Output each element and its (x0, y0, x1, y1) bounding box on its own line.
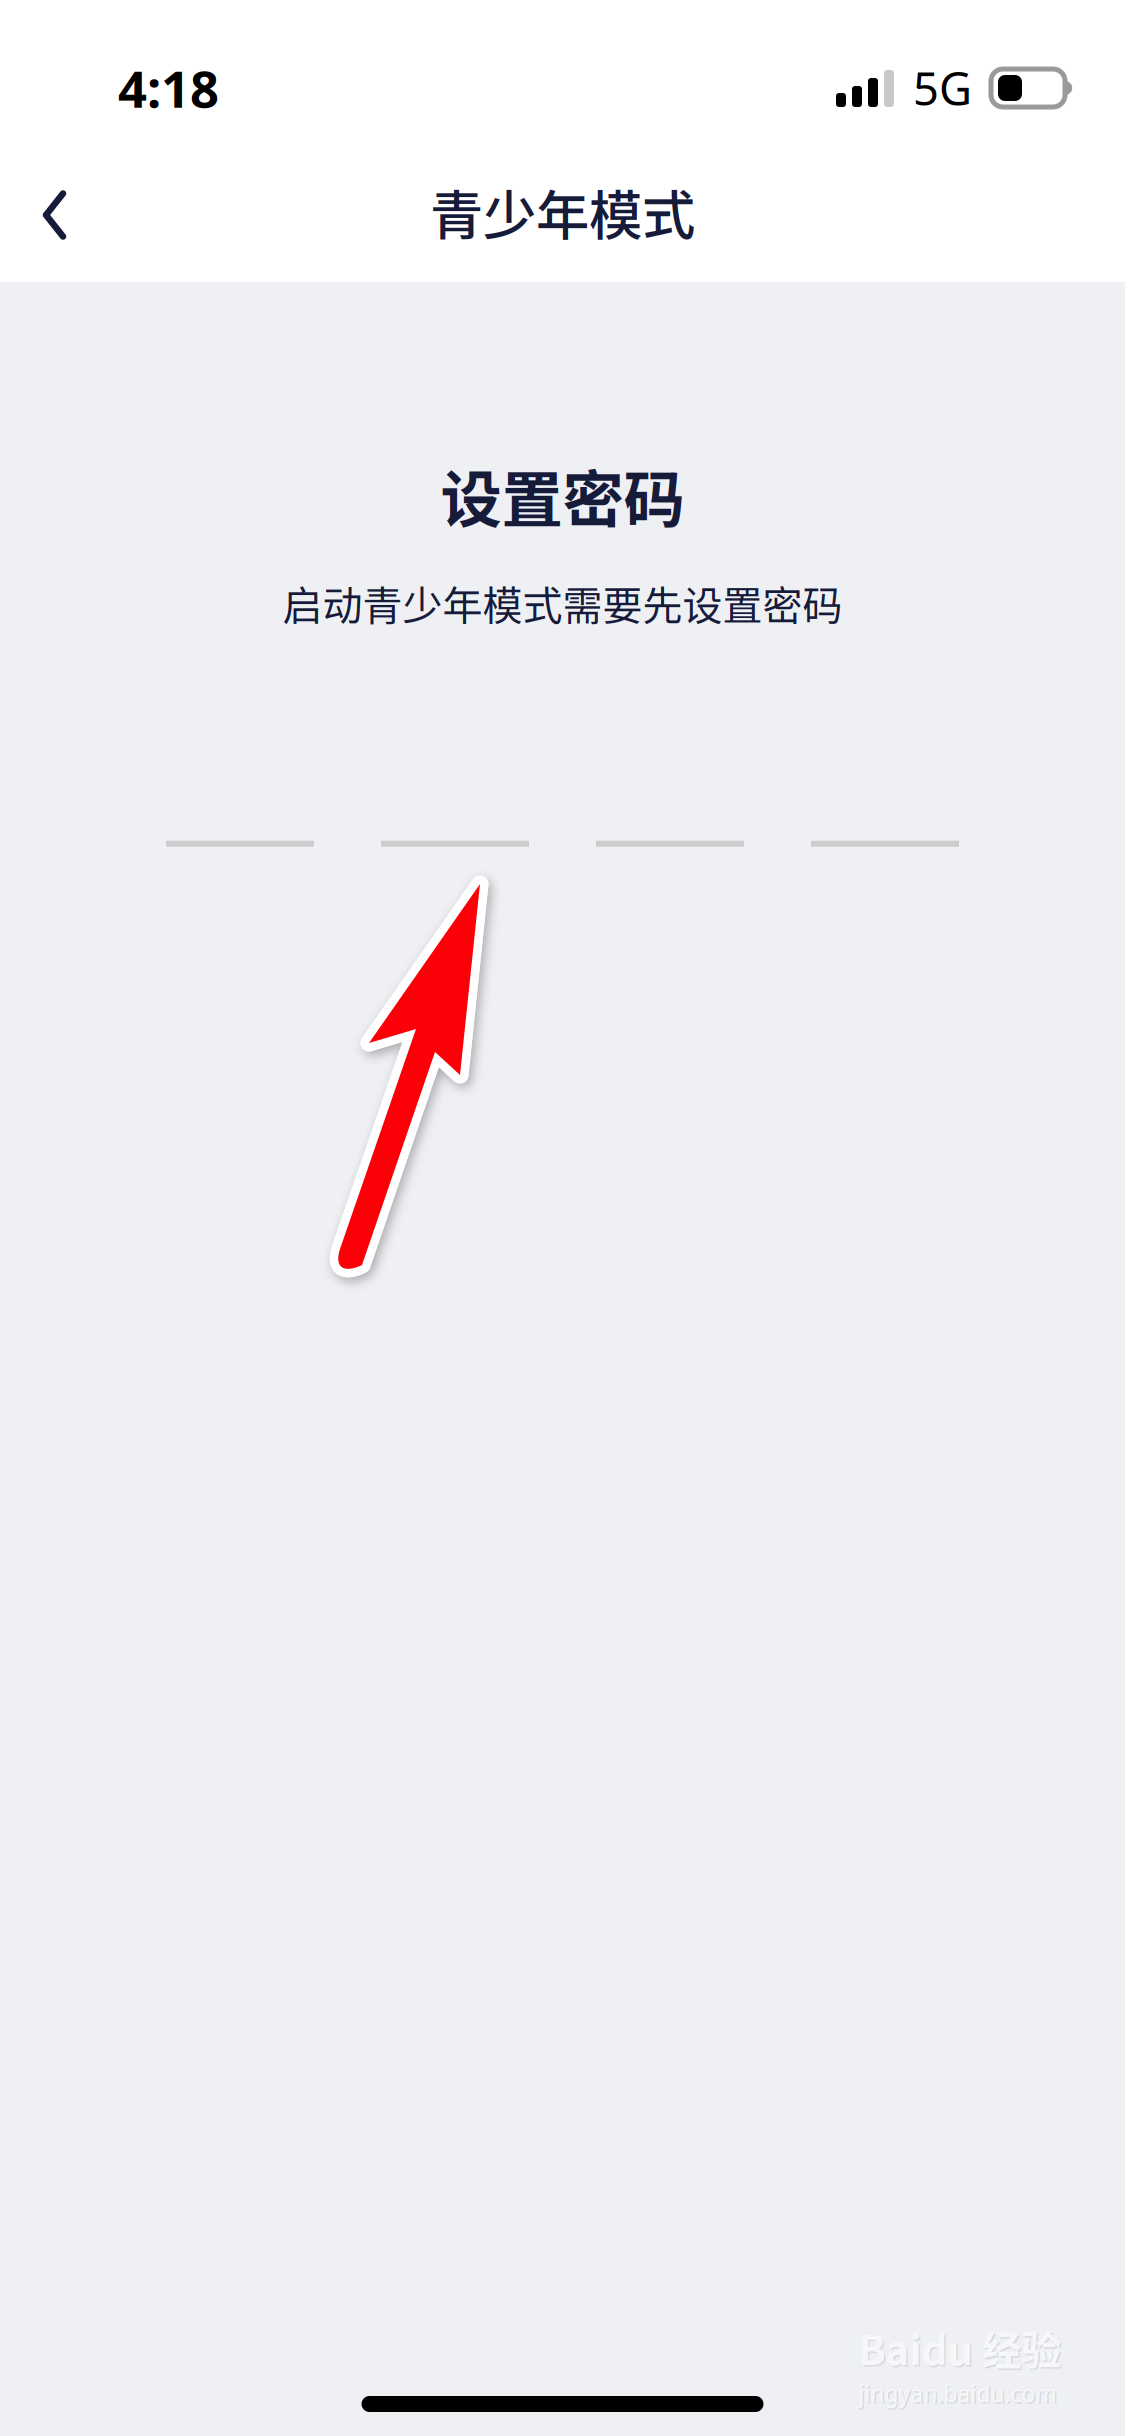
button[interactable]: 密码输入框 (166, 841, 959, 847)
staticText: 启动青少年模式需要先设置密码 (282, 574, 842, 632)
staticText: 5G (913, 58, 972, 118)
staticText: 设置密码 (440, 451, 684, 540)
staticText: Baidu 经验 (860, 2320, 1063, 2378)
staticText: jingyan.baidu.com (858, 2378, 1056, 2408)
staticText: 青少年模式 (430, 173, 695, 251)
staticText: jingyan.baidu.com (860, 2380, 1058, 2410)
staticText: Baidu 经验 (858, 2318, 1061, 2376)
staticText: 4:18 (118, 54, 219, 122)
button[interactable]: 返回 (0, 153, 112, 271)
